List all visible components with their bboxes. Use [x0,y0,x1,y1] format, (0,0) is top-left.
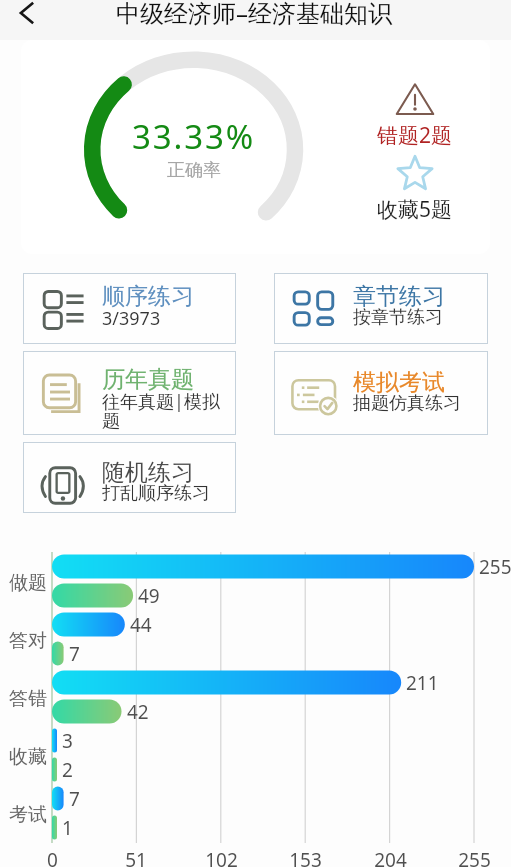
staticText: 3/3973 [102,306,161,331]
button[interactable]: 收藏 [377,155,453,224]
staticText: 考试 [9,803,47,827]
button[interactable]: 历年真题 [23,351,236,435]
staticText: 顺序练习 [102,282,194,311]
button[interactable]: 错题 [377,83,453,150]
staticText: 153 [289,847,322,867]
button[interactable]: 顺序练习 [23,273,236,344]
staticText: 49 [138,583,160,609]
staticText: 正确率 [167,159,221,182]
staticText: 收藏 [9,745,47,769]
staticText: 答错 [9,687,47,711]
staticText: 收藏5题 [377,195,453,224]
staticText: 历年真题 [102,365,194,394]
staticText: 模拟考试 [353,368,445,397]
staticText: 做题 [9,571,47,595]
staticText: 3 [62,728,73,754]
staticText: 44 [130,612,152,638]
button[interactable]: Back [9,2,45,38]
button[interactable]: 随机练习 [23,442,236,513]
staticText: 0 [47,847,58,867]
staticText: 33.33% [132,114,256,159]
staticText: 7 [69,641,80,667]
staticText: 答对 [9,629,47,653]
staticText: 204 [374,847,407,867]
staticText: 102 [205,847,238,867]
staticText: 随机练习 [102,458,194,487]
staticText: 章节练习 [353,282,445,311]
button[interactable]: 章节练习 [274,273,488,344]
staticText: 打乱顺序练习 [102,482,210,505]
staticText: 往年真题|模拟题 [102,389,234,433]
staticText: 抽题仿真练习 [353,392,461,415]
staticText: 51 [125,847,147,867]
staticText: 7 [69,786,80,812]
staticText: 42 [127,699,149,725]
staticText: 211 [406,670,439,696]
staticText: 按章节练习 [353,306,443,329]
staticText: 255 [479,554,511,580]
button[interactable]: 模拟考试 [274,351,488,435]
staticText: 1 [62,815,73,841]
staticText: 255 [458,847,491,867]
staticText: 错题2题 [377,121,453,150]
staticText: 中级经济师–经济基础知识 [116,0,392,29]
staticText: 2 [62,757,73,783]
